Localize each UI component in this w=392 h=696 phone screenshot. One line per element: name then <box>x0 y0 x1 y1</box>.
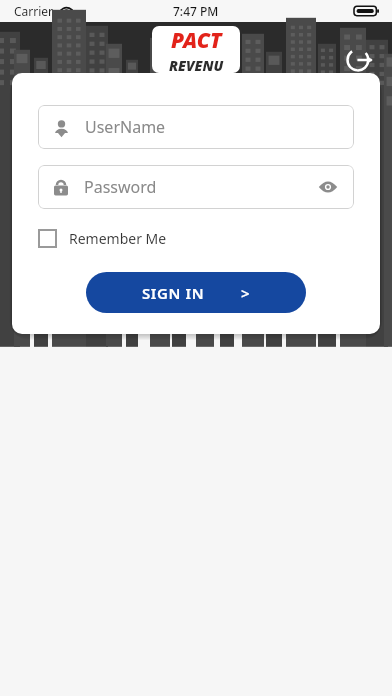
staticText: Carrier <box>14 3 54 19</box>
staticText: > <box>241 283 250 303</box>
button[interactable]: Show password <box>315 174 341 200</box>
button[interactable]: Password <box>38 165 354 209</box>
button[interactable]: Sign out <box>338 38 382 82</box>
button[interactable]: UserName <box>38 105 354 149</box>
staticText: REVENU <box>169 56 224 73</box>
staticText: SIGN IN <box>142 283 205 303</box>
staticText: PACT <box>171 26 222 55</box>
staticText: UserName <box>85 116 341 138</box>
staticText: 7:47 PM <box>173 3 219 19</box>
button[interactable]: SIGN IN <box>86 272 306 313</box>
button[interactable]: Remember Me <box>38 227 167 250</box>
staticText: Password <box>84 176 315 198</box>
staticText: Remember Me <box>69 229 167 248</box>
